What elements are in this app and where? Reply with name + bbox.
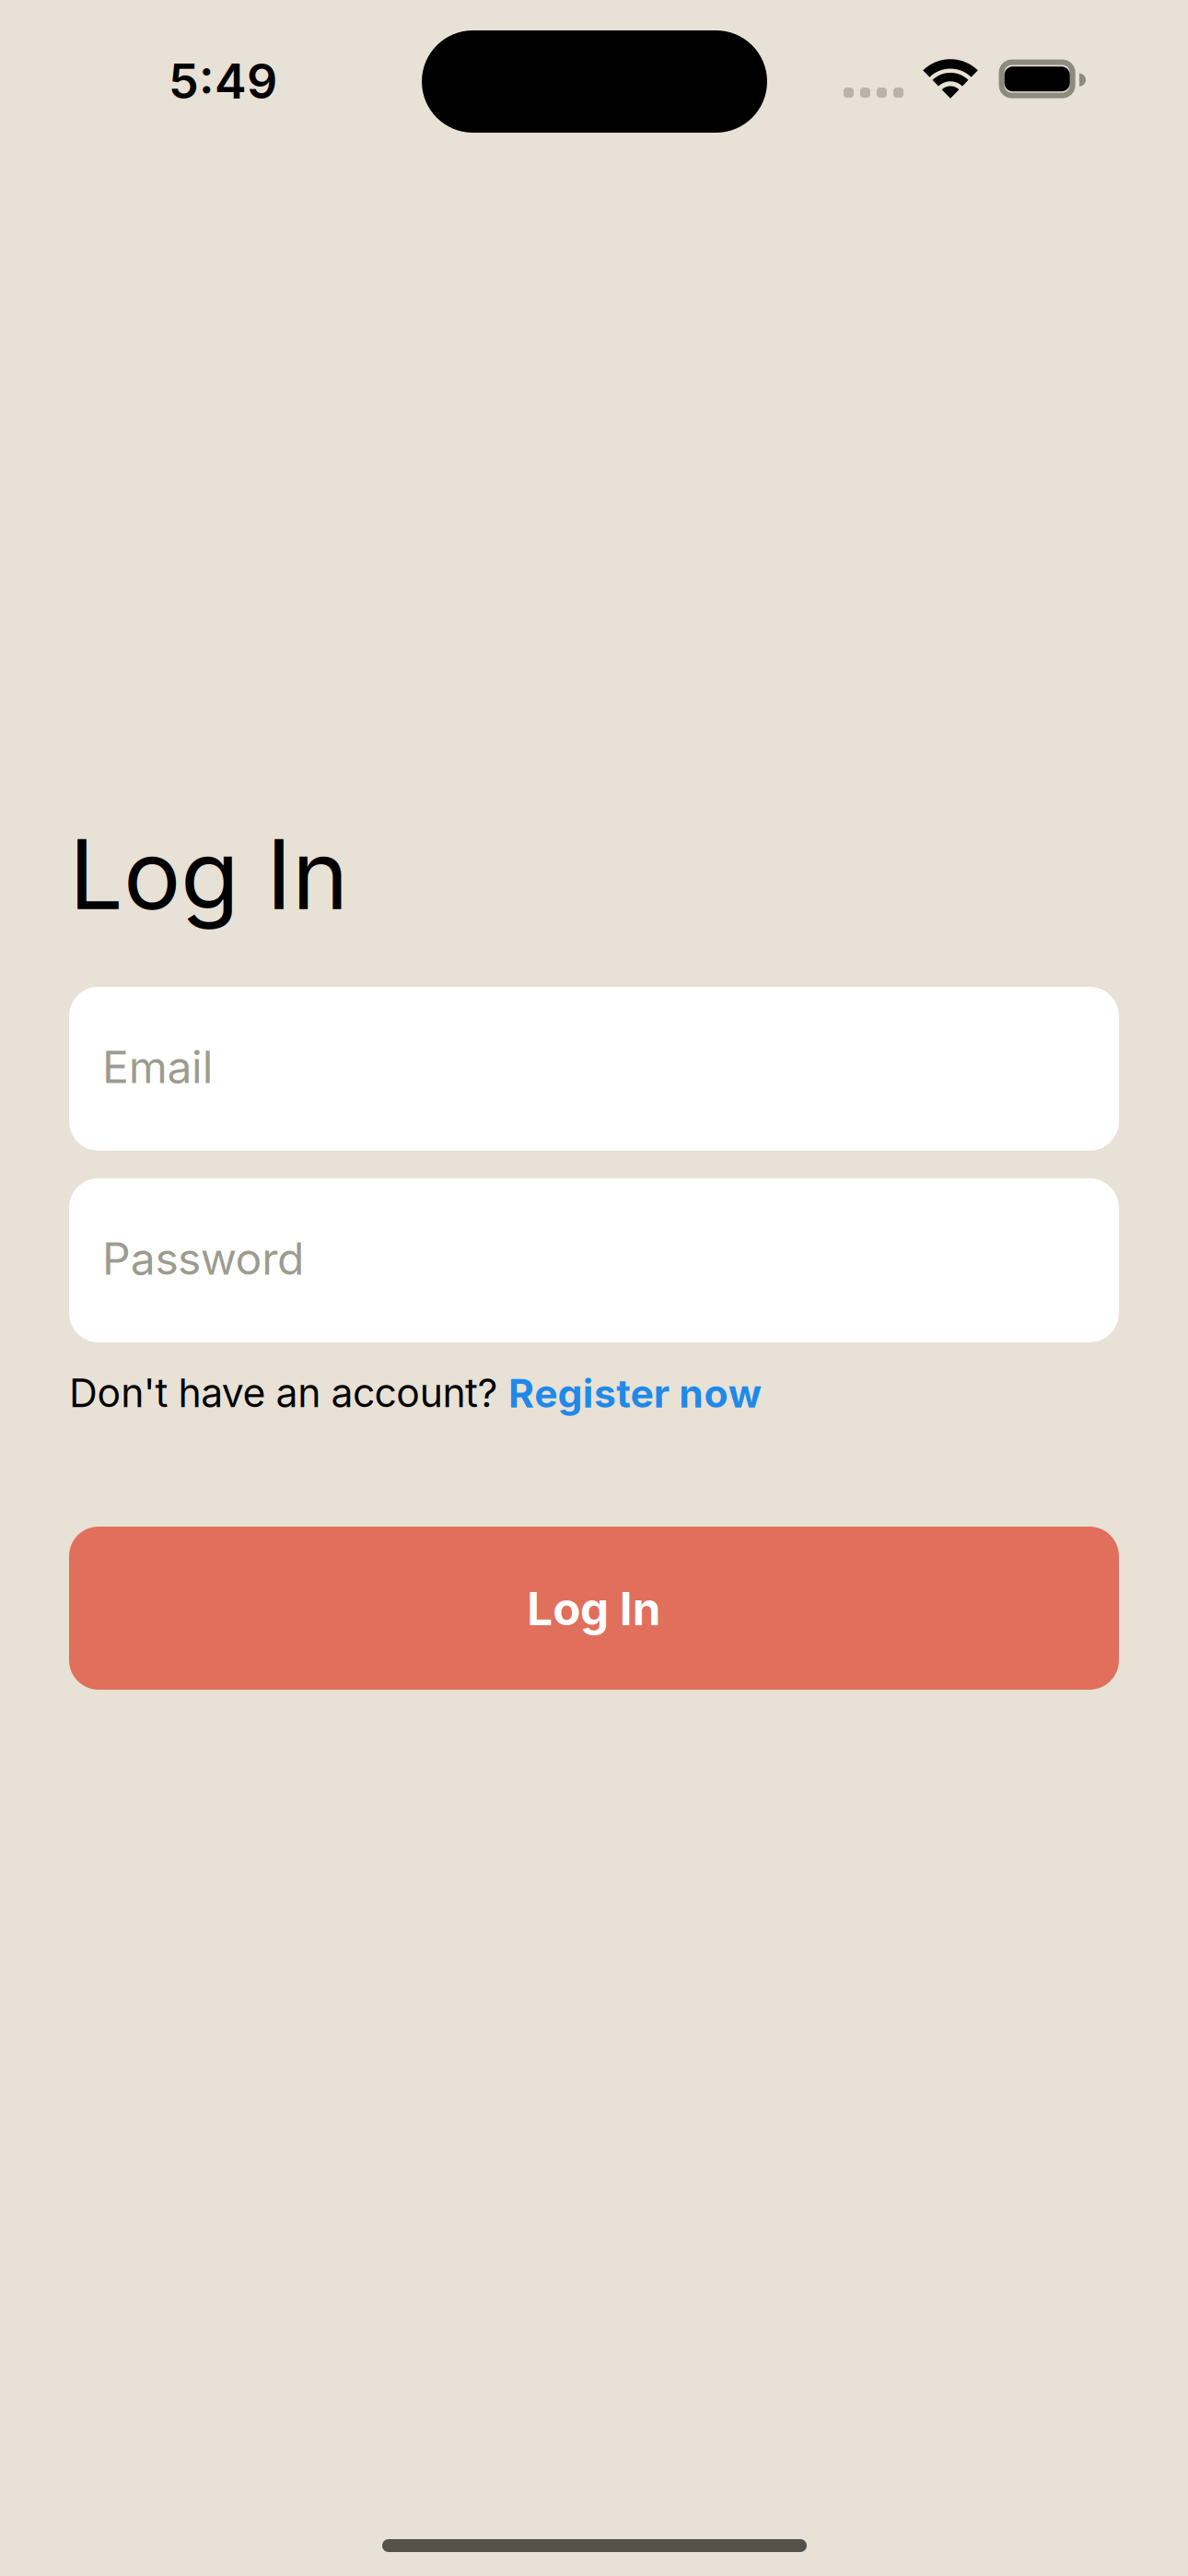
staticText: Email <box>102 1040 213 1094</box>
staticText: Don't have an account? <box>69 1369 498 1417</box>
staticText: Log In <box>69 816 348 932</box>
button[interactable]: Log In <box>69 1527 1119 1690</box>
staticText: Password <box>102 1232 304 1285</box>
staticText: Register now <box>508 1370 761 1417</box>
secureTextField[interactable]: Password <box>102 1232 1119 1285</box>
staticText: Log In <box>527 1581 661 1636</box>
button[interactable]: Register now <box>508 1370 761 1417</box>
staticText: 5:49 <box>169 52 277 110</box>
textField[interactable]: Email <box>102 1040 1119 1094</box>
